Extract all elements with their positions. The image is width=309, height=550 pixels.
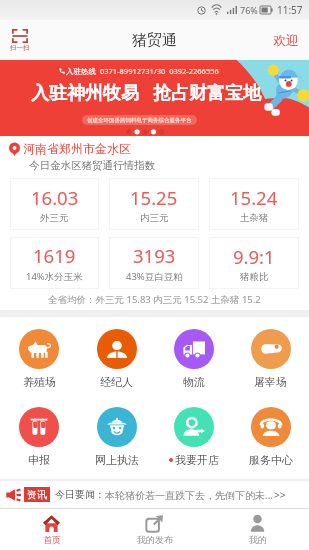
button[interactable]: 申报 [0,407,78,467]
staticText: 1619 [33,243,76,268]
button[interactable]: 首页 [0,509,103,550]
staticText: 今日金水区猪贸通行情指数 [29,159,155,172]
staticText: 本轮猪价若一直跌下去，先倒下的未... [105,488,274,502]
staticText: 服务中心 [249,453,293,467]
button[interactable]: 养殖场 [0,329,78,389]
button[interactable]: 16.03 [10,178,99,230]
staticText: 养殖场 [23,375,56,389]
button[interactable]: 15.24 [209,178,299,230]
staticText: 15.25 [130,185,178,210]
button[interactable]: 屠宰场 [232,329,309,389]
staticText: 我的 [249,534,267,545]
staticText: 16.03 [31,185,79,210]
button[interactable]: 1619 [10,237,99,289]
staticText: 43%豆白豆粕 [126,270,183,283]
staticText: 外三元 [40,212,69,224]
staticText: 扫一扫 [10,44,30,52]
staticText: 猪粮比 [240,271,269,283]
button[interactable]: 扫一扫 [8,29,32,52]
button[interactable]: 河南省郑州市金水区 [9,141,131,156]
staticText: 土杂猪 [240,212,269,224]
staticText: >> [274,488,286,502]
staticText: 3193 [133,243,176,268]
staticText: 网上执法 [95,453,139,467]
button[interactable]: 15.25 [109,178,199,230]
button[interactable]: 服务中心 [232,407,309,467]
button[interactable]: 我的 [206,509,309,550]
button[interactable]: 入驻热线 [0,60,309,136]
staticText: 屠宰场 [254,375,287,389]
staticText: 资讯 [27,488,47,501]
staticText: 全省均价：外三元 15.83 内三元 15.52 土杂猪 15.2 [48,293,261,306]
staticText: 0371-89912731/30 0392-2266556 [100,66,219,76]
button[interactable]: 物流 [155,329,232,389]
staticText: 我的发布 [137,534,173,545]
button[interactable]: 网上执法 [78,407,155,467]
staticText: 14%水分玉米 [26,270,83,283]
button[interactable]: 3193 [109,237,199,289]
button[interactable]: 9.9:1 [209,237,299,289]
staticText: 我要开店 [175,453,219,467]
staticText: 15.24 [230,185,278,210]
staticText: 河南省郑州市金水区 [23,141,131,156]
staticText: 76% [240,4,258,16]
staticText: 物流 [183,375,205,389]
button[interactable]: 资讯 [0,481,309,508]
button[interactable]: 欢迎 [273,32,309,48]
staticText: 入驻热线 [66,67,96,76]
button[interactable]: 我要开店 [155,407,232,467]
staticText: 申报 [28,453,50,467]
staticText: 首页 [43,534,61,545]
staticText: 11:57 [277,3,303,17]
staticText: 入驻神州牧易 抢占财富宝地 [31,80,262,105]
staticText: 今日要闻： [55,488,105,501]
staticText: 创建全环国兽药饲料电子商务综合服务平台 [87,117,192,124]
staticText: 内三元 [140,212,169,224]
staticText: 9.9:1 [233,244,275,269]
button[interactable]: 我的发布 [103,509,206,550]
staticText: 经纪人 [100,375,133,389]
button[interactable]: 经纪人 [78,329,155,389]
staticText: 猪贸通 [132,31,177,50]
